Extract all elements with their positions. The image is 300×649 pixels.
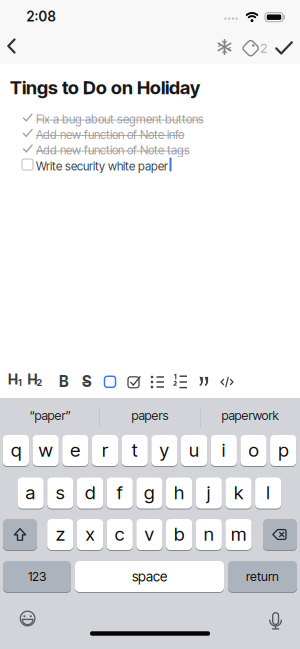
staticText: o: [248, 439, 258, 461]
staticText: 123: [28, 569, 46, 584]
button[interactable]: d: [0, 0, 300, 649]
button[interactable]: z: [0, 0, 300, 649]
staticText: 2:08: [26, 8, 55, 24]
button[interactable]: Completed: [0, 0, 300, 649]
button[interactable]: Bold: [55, 371, 73, 391]
staticText: j: [207, 481, 211, 503]
staticText: return: [246, 569, 279, 584]
button[interactable]: c: [0, 0, 300, 649]
staticText: “paper”: [29, 408, 70, 423]
staticText: g: [144, 481, 155, 503]
button[interactable]: Tags: [0, 0, 300, 649]
button[interactable]: m: [0, 0, 300, 649]
staticText: t: [132, 439, 138, 461]
staticText: b: [174, 523, 184, 545]
button[interactable]: Quote: [199, 376, 209, 386]
staticText: y: [159, 439, 169, 461]
staticText: B: [59, 372, 69, 391]
staticText: Write security white paper: [36, 159, 168, 173]
button[interactable]: Shift: [0, 0, 300, 649]
staticText: Add new function of Note info: [36, 128, 184, 142]
button[interactable]: b: [0, 0, 300, 649]
button[interactable]: t: [0, 0, 300, 649]
staticText: k: [234, 481, 243, 503]
button[interactable]: Completed: [0, 0, 300, 649]
button[interactable]: f: [0, 0, 300, 649]
button[interactable]: Delete: [0, 0, 300, 649]
button[interactable]: Dictate: [0, 0, 300, 649]
button[interactable]: j: [0, 0, 300, 649]
staticText: Add new function of Note tags: [36, 143, 190, 157]
staticText: v: [144, 523, 154, 545]
staticText: r: [102, 439, 108, 461]
button[interactable]: Back: [0, 0, 300, 649]
button[interactable]: Info: [0, 0, 300, 649]
button[interactable]: Checkbox: [22, 159, 33, 170]
staticText: m: [231, 523, 246, 545]
button[interactable]: return: [0, 0, 300, 649]
button[interactable]: p: [0, 0, 300, 649]
button[interactable]: Bullet list: [150, 374, 166, 390]
button[interactable]: paperwork: [202, 400, 298, 430]
button[interactable]: Completed: [0, 0, 300, 649]
button[interactable]: Numbered list: [173, 374, 189, 390]
button[interactable]: q: [0, 0, 300, 649]
staticText: paperwork: [221, 408, 278, 423]
button[interactable]: Heading 2: [27, 371, 45, 391]
button[interactable]: i: [0, 0, 300, 649]
button[interactable]: o: [0, 0, 300, 649]
button[interactable]: “paper”: [2, 400, 98, 430]
staticText: Fix a bug about segment buttons: [36, 112, 204, 126]
button[interactable]: Emoji: [0, 0, 300, 649]
staticText: n: [204, 523, 214, 545]
button[interactable]: u: [0, 0, 300, 649]
staticText: H: [27, 371, 37, 388]
button[interactable]: space: [0, 0, 300, 649]
button[interactable]: Empty checkbox: [104, 376, 115, 387]
staticText: space: [132, 568, 167, 584]
button[interactable]: y: [0, 0, 300, 649]
staticText: z: [56, 523, 65, 545]
button[interactable]: Heading 1: [7, 371, 25, 391]
staticText: 2: [36, 377, 42, 388]
button[interactable]: r: [0, 0, 300, 649]
staticText: w: [39, 439, 53, 461]
staticText: c: [115, 523, 125, 545]
staticText: x: [85, 523, 94, 545]
button[interactable]: v: [0, 0, 300, 649]
staticText: S: [82, 372, 92, 391]
staticText: f: [117, 481, 123, 503]
button[interactable]: e: [0, 0, 300, 649]
staticText: 2: [260, 40, 267, 56]
staticText: h: [174, 481, 184, 503]
staticText: 1: [18, 377, 22, 388]
button[interactable]: h: [0, 0, 300, 649]
button[interactable]: 123: [0, 0, 300, 649]
staticText: i: [222, 439, 226, 461]
button[interactable]: s: [0, 0, 300, 649]
staticText: d: [85, 481, 95, 503]
button[interactable]: l: [0, 0, 300, 649]
staticText: u: [189, 439, 199, 461]
button[interactable]: Strikethrough: [78, 371, 96, 391]
staticText: p: [278, 439, 288, 461]
button[interactable]: n: [0, 0, 300, 649]
button[interactable]: papers: [102, 400, 198, 430]
staticText: s: [56, 481, 65, 503]
staticText: l: [266, 481, 270, 503]
staticText: e: [70, 439, 80, 461]
button[interactable]: x: [0, 0, 300, 649]
button[interactable]: Done: [0, 0, 300, 649]
staticText: H: [8, 371, 18, 388]
staticText: papers: [131, 408, 168, 423]
button[interactable]: w: [0, 0, 300, 649]
button[interactable]: k: [0, 0, 300, 649]
button[interactable]: g: [0, 0, 300, 649]
button[interactable]: Checked checkbox: [126, 374, 142, 390]
staticText: Tings to Do on Holiday: [10, 77, 200, 98]
staticText: q: [11, 439, 21, 461]
button[interactable]: Code: [220, 375, 234, 389]
button[interactable]: a: [0, 0, 300, 649]
staticText: a: [26, 481, 36, 503]
